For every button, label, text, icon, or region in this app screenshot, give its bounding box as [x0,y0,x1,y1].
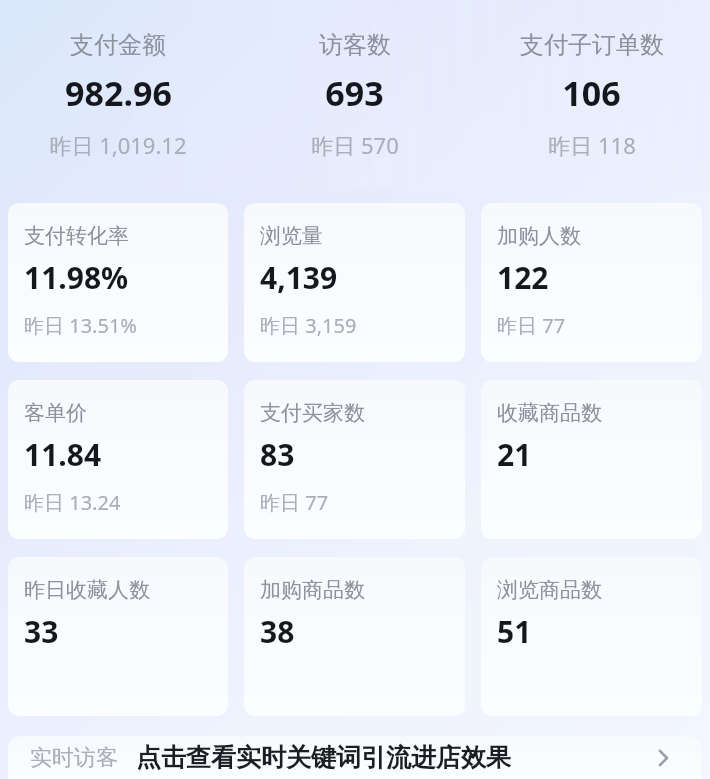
button[interactable]: 加购人数 [481,203,702,362]
staticText: 106 [562,70,621,116]
staticText: 昨日 77 [260,489,329,516]
staticText: 支付转化率 [24,223,129,249]
staticText: 昨日 13.51% [24,312,137,339]
button[interactable]: 浏览量 [244,203,465,362]
staticText: 昨日 77 [497,312,566,339]
staticText: 33 [24,611,59,652]
button[interactable]: 访客数 [236,30,473,160]
button[interactable]: 查看详情 [646,741,680,775]
staticText: 昨日 570 [311,130,399,160]
staticText: 加购人数 [497,223,581,249]
button[interactable]: 昨日收藏人数 [8,557,228,716]
button[interactable]: 支付转化率 [8,203,228,362]
staticText: 693 [325,70,384,116]
staticText: 11.98% [24,257,129,298]
staticText: 实时访客 [30,744,118,772]
staticText: 加购商品数 [260,577,365,603]
button[interactable]: 客单价 [8,380,228,539]
staticText: 21 [497,434,532,475]
staticText: 客单价 [24,400,87,426]
staticText: 访客数 [319,30,391,60]
staticText: 支付子订单数 [520,30,664,60]
staticText: 点击查看实时关键词引流进店效果 [136,742,511,773]
button[interactable]: 支付子订单数 [473,30,710,160]
staticText: 昨日 3,159 [260,312,357,339]
staticText: 浏览商品数 [497,577,602,603]
staticText: 51 [497,611,532,652]
staticText: 122 [497,257,549,298]
staticText: 982.96 [65,70,172,116]
staticText: 支付金额 [70,30,166,60]
staticText: 83 [260,434,295,475]
button[interactable]: 支付买家数 [244,380,465,539]
staticText: 38 [260,611,295,652]
staticText: 收藏商品数 [497,400,602,426]
staticText: 昨日收藏人数 [24,577,150,603]
button[interactable]: 收藏商品数 [481,380,702,539]
button[interactable]: 支付金额 [0,30,236,160]
staticText: 支付买家数 [260,400,365,426]
staticText: 昨日 13.24 [24,489,121,516]
staticText: 11.84 [24,434,102,475]
button[interactable]: 加购商品数 [244,557,465,716]
button[interactable]: 浏览商品数 [481,557,702,716]
staticText: 4,139 [260,257,338,298]
staticText: 昨日 1,019.12 [49,130,187,160]
button[interactable]: 实时访客 [8,736,702,779]
staticText: 昨日 118 [548,130,636,160]
staticText: 浏览量 [260,223,323,249]
